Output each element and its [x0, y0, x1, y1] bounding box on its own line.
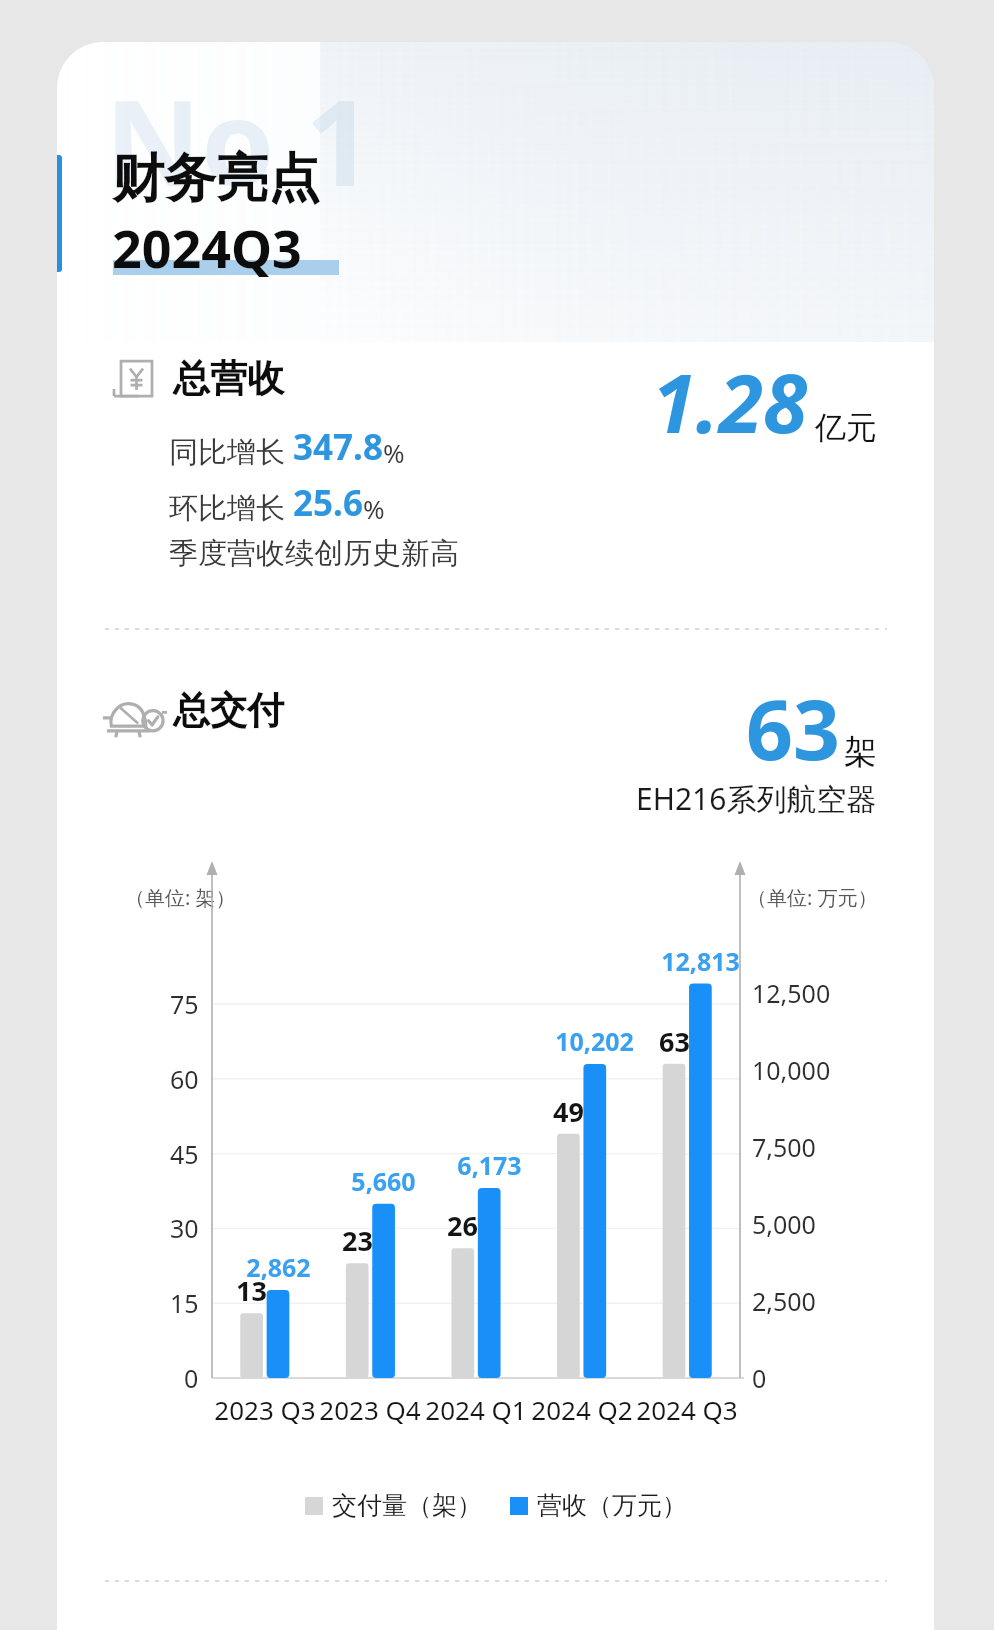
staticText: 30: [170, 1211, 199, 1245]
button[interactable]: 交付量（架）: [305, 1490, 482, 1521]
staticText: （单位: 万元）: [747, 884, 878, 911]
staticText: 2023 Q4: [319, 1392, 421, 1427]
staticText: 季度营收续创历史新高: [169, 535, 459, 572]
staticText: （单位: 架）: [125, 884, 236, 911]
staticText: 财务亮点: [112, 146, 320, 212]
staticText: 7,500: [752, 1130, 816, 1164]
staticText: 63: [659, 1023, 690, 1060]
staticText: 2,500: [752, 1284, 816, 1318]
staticText: 总营收: [173, 355, 284, 402]
staticText: 2024 Q1: [425, 1392, 527, 1427]
staticText: 环比增长: [169, 487, 293, 527]
staticText: 23: [342, 1222, 373, 1259]
staticText: 0: [752, 1361, 767, 1395]
other: Deliveries: [103, 694, 167, 740]
other: Revenue: [109, 356, 159, 406]
staticText: 49: [553, 1093, 584, 1130]
staticText: 12,813: [661, 944, 740, 978]
staticText: 6,173: [457, 1148, 522, 1182]
staticText: %: [383, 435, 405, 470]
staticText: 60: [170, 1062, 199, 1096]
staticText: 0: [184, 1361, 199, 1395]
staticText: 架: [844, 731, 877, 773]
staticText: 交付量（架）: [332, 1490, 482, 1521]
staticText: 2,862: [246, 1250, 311, 1284]
staticText: 10,202: [555, 1024, 634, 1058]
staticText: 营收（万元）: [537, 1490, 687, 1521]
staticText: 45: [170, 1137, 199, 1171]
staticText: 2024 Q3: [636, 1392, 738, 1427]
staticText: EH216系列航空器: [636, 778, 877, 819]
staticText: 15: [170, 1286, 199, 1320]
staticText: 75: [170, 987, 199, 1021]
staticText: 2024 Q2: [531, 1392, 633, 1427]
staticText: 5,660: [351, 1164, 416, 1198]
staticText: 同比增长: [169, 431, 293, 471]
staticText: No 1: [105, 60, 373, 221]
staticText: 12,500: [752, 976, 831, 1010]
staticText: 25.6: [293, 479, 363, 527]
staticText: 1.28: [652, 347, 808, 456]
staticText: 63: [746, 672, 840, 784]
staticText: 347.8: [293, 423, 383, 471]
staticText: 26: [447, 1207, 478, 1244]
staticText: 2023 Q3: [214, 1392, 316, 1427]
staticText: 5,000: [752, 1207, 816, 1241]
staticText: 亿元: [815, 408, 877, 447]
staticText: 13: [236, 1272, 267, 1309]
staticText: 2024Q3: [112, 212, 302, 283]
staticText: 总交付: [173, 687, 284, 734]
staticText: 10,000: [752, 1053, 831, 1087]
button[interactable]: 营收（万元）: [510, 1490, 687, 1521]
staticText: %: [363, 491, 385, 526]
